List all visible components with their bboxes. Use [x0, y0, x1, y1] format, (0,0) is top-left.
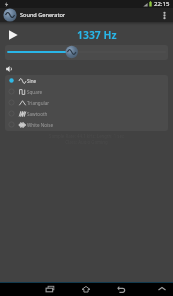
button[interactable]: Recents: [42, 282, 58, 296]
button[interactable]: More options: [157, 8, 171, 22]
button[interactable]: Sawtooth: [5, 108, 168, 119]
button[interactable]: Triangular: [5, 97, 168, 108]
staticText: Sine: [27, 78, 37, 84]
button[interactable]: Square: [5, 86, 168, 97]
button[interactable]: Expand: [154, 282, 170, 296]
button[interactable]: Play: [4, 26, 22, 44]
staticText: 22:15: [154, 0, 170, 8]
button[interactable]: Sine: [5, 75, 168, 86]
button[interactable]: Frequency slider: [5, 45, 168, 60]
staticText: Triangular: [27, 100, 50, 106]
button[interactable]: Home: [78, 282, 94, 296]
staticText: Sound Generator: [20, 11, 66, 19]
button[interactable]: Volume: [2, 62, 16, 76]
button[interactable]: Back: [113, 282, 129, 296]
staticText: White Noise: [27, 122, 53, 128]
button[interactable]: White Noise: [5, 119, 168, 130]
staticText: Square: [27, 89, 43, 95]
staticText: Sawtooth: [27, 111, 48, 117]
staticText: 1337 Hz: [77, 28, 117, 40]
